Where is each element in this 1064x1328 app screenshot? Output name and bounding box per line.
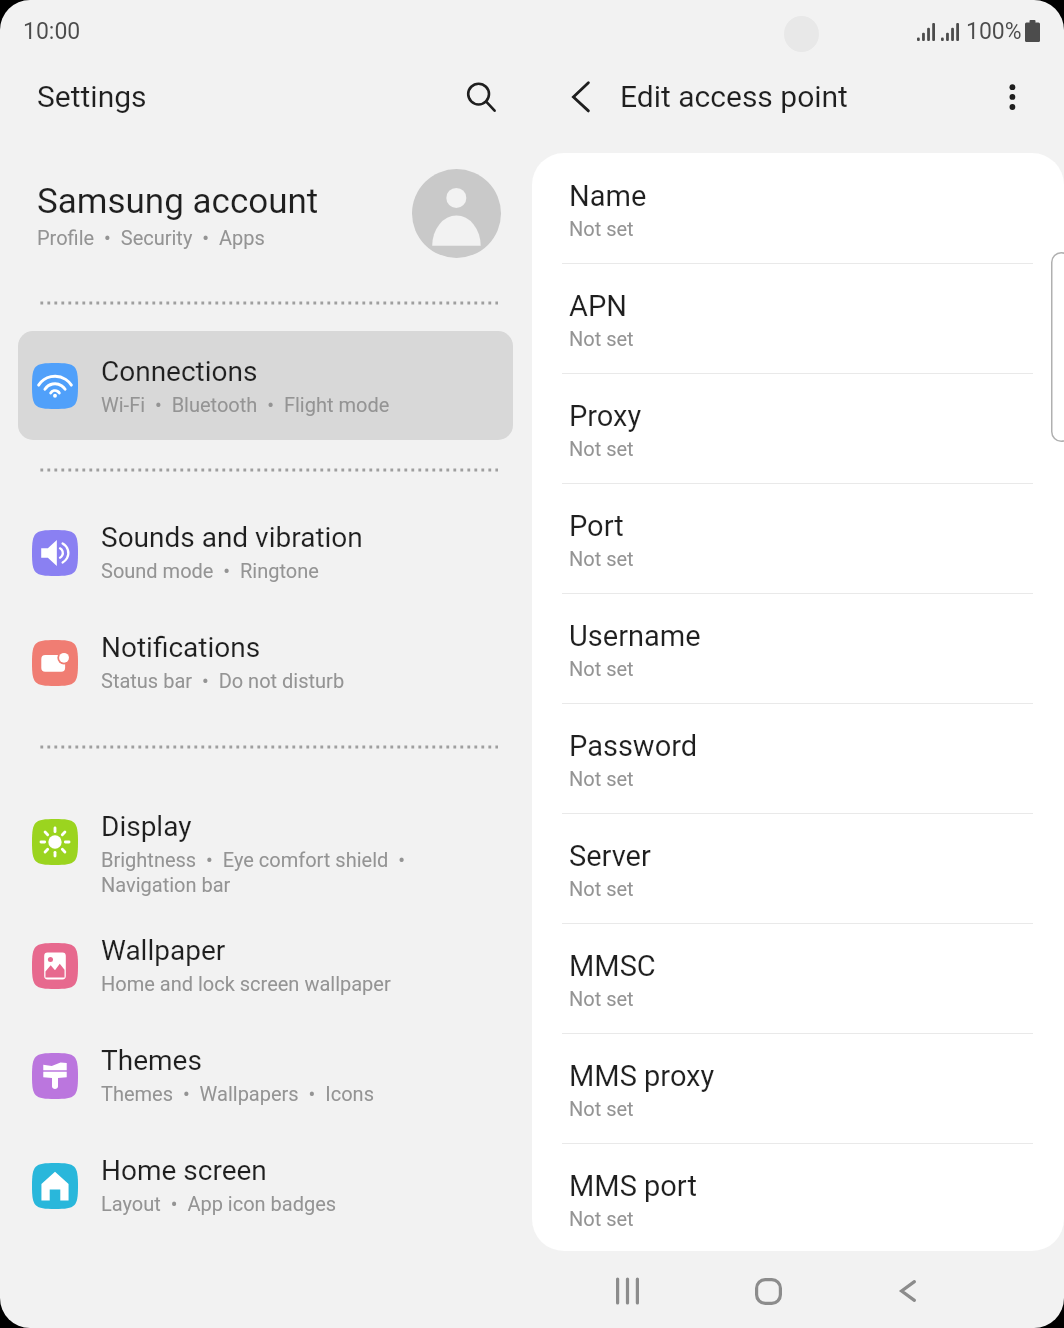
button[interactable]: Username xyxy=(532,593,1064,703)
button[interactable]: Notifications xyxy=(0,607,532,717)
staticText: Username xyxy=(569,619,701,653)
staticText: Layout • App icon badges xyxy=(101,1192,337,1215)
button[interactable]: Proxy xyxy=(532,373,1064,483)
staticText: Not set xyxy=(569,437,634,460)
staticText: Themes • Wallpapers • Icons xyxy=(101,1082,374,1105)
staticText: Wallpaper xyxy=(101,934,226,967)
button[interactable]: Back xyxy=(549,73,597,121)
button[interactable]: MMS port xyxy=(532,1143,1064,1251)
staticText: Display xyxy=(101,810,192,843)
staticText: Proxy xyxy=(569,399,642,433)
staticText: Password xyxy=(569,729,698,763)
button[interactable]: Wallpaper xyxy=(0,910,532,1020)
staticText: Connections xyxy=(101,355,258,388)
staticText: Navigation bar xyxy=(101,873,231,896)
button[interactable]: Samsung account xyxy=(0,166,532,278)
button[interactable]: Recent apps xyxy=(587,1251,667,1328)
staticText: Edit access point xyxy=(620,79,848,114)
staticText: Not set xyxy=(569,767,634,790)
staticText: Port xyxy=(569,509,624,543)
staticText: MMSC xyxy=(569,949,656,983)
button[interactable]: Home xyxy=(728,1251,808,1328)
button[interactable]: Themes xyxy=(0,1020,532,1130)
staticText: Not set xyxy=(569,327,634,350)
staticText: APN xyxy=(569,289,627,323)
staticText: Not set xyxy=(569,217,634,240)
button[interactable]: Sounds and vibration xyxy=(0,497,532,607)
button[interactable]: Back xyxy=(868,1251,948,1328)
button[interactable]: Port xyxy=(532,483,1064,593)
staticText: Home and lock screen wallpaper xyxy=(101,972,391,995)
button[interactable]: Server xyxy=(532,813,1064,923)
staticText: Not set xyxy=(569,1097,634,1120)
staticText: Not set xyxy=(569,877,634,900)
staticText: Not set xyxy=(569,657,634,680)
button[interactable]: Name xyxy=(532,153,1064,263)
staticText: Samsung account xyxy=(37,181,319,222)
staticText: Settings xyxy=(37,79,147,114)
button[interactable]: Password xyxy=(532,703,1064,813)
staticText: Wi-Fi • Bluetooth • Flight mode xyxy=(101,393,390,416)
staticText: Brightness • Eye comfort shield • xyxy=(101,848,405,871)
staticText: 100% xyxy=(966,18,1022,45)
staticText: Sounds and vibration xyxy=(101,521,363,554)
staticText: Not set xyxy=(569,987,634,1010)
button[interactable]: MMS proxy xyxy=(532,1033,1064,1143)
staticText: MMS proxy xyxy=(569,1059,715,1093)
staticText: Sound mode • Ringtone xyxy=(101,559,319,582)
staticText: Notifications xyxy=(101,631,261,664)
staticText: Not set xyxy=(569,1207,634,1230)
staticText: Name xyxy=(569,179,647,213)
staticText: Status bar • Do not disturb xyxy=(101,669,345,692)
button[interactable]: Home screen xyxy=(0,1130,532,1240)
button[interactable]: Connections xyxy=(18,331,513,440)
staticText: Server xyxy=(569,839,651,873)
staticText: MMS port xyxy=(569,1169,697,1203)
button[interactable]: MMSC xyxy=(532,923,1064,1033)
button[interactable]: APN xyxy=(532,263,1064,373)
staticText: Themes xyxy=(101,1044,202,1077)
staticText: Profile • Security • Apps xyxy=(37,226,265,249)
staticText: Not set xyxy=(569,547,634,570)
button[interactable]: More options xyxy=(988,73,1036,121)
button[interactable]: Search xyxy=(455,71,503,119)
staticText: 10:00 xyxy=(23,18,81,45)
staticText: Home screen xyxy=(101,1154,267,1187)
button[interactable]: Display xyxy=(0,786,532,896)
